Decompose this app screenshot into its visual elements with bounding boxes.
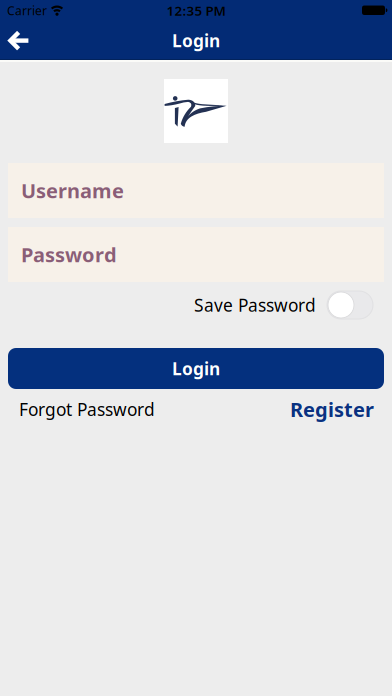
staticText: Register — [290, 396, 374, 423]
staticText: Login — [172, 29, 220, 52]
staticText: Carrier — [7, 2, 47, 18]
button[interactable]: Login — [8, 348, 384, 389]
staticText: Password — [21, 241, 117, 268]
button[interactable]: Password — [8, 227, 384, 282]
button[interactable]: Username — [8, 163, 384, 218]
button[interactable]: Forgot Password — [19, 398, 155, 421]
staticText: Username — [21, 177, 124, 204]
staticText: 12:35 PM — [166, 2, 225, 19]
button[interactable]: Save Password — [327, 291, 373, 319]
staticText: Login — [172, 357, 220, 380]
button[interactable]: Back — [0, 21, 28, 60]
button[interactable]: Register — [290, 396, 374, 423]
staticText: Save Password — [194, 293, 316, 316]
staticText: Forgot Password — [19, 398, 155, 421]
